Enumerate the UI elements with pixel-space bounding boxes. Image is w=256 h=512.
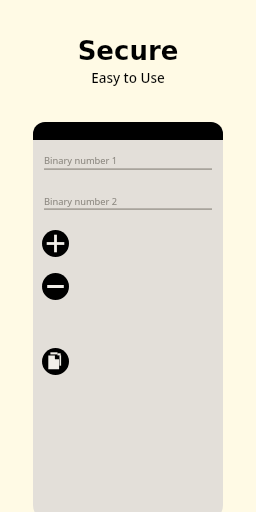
button[interactable]: Binary number 1 [44, 154, 212, 170]
button[interactable]: Add [42, 230, 69, 257]
button[interactable]: Binary number 2 [44, 195, 212, 210]
staticText: Binary number 2 [44, 195, 118, 208]
staticText: Binary number 1 [44, 154, 118, 167]
button[interactable]: Subtract [42, 273, 69, 300]
button[interactable]: Copy result [42, 348, 69, 375]
staticText: Easy to Use [0, 69, 256, 87]
staticText: Secure [0, 36, 256, 66]
